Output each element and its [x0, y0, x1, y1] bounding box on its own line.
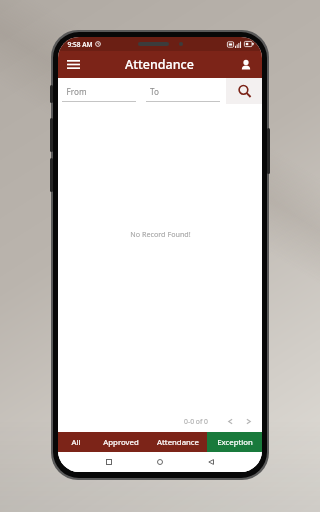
button[interactable]: Open navigation menu [62, 53, 85, 76]
button[interactable]: From [58, 78, 142, 104]
button[interactable]: Recent apps [99, 452, 119, 472]
button[interactable]: Approved [93, 432, 148, 452]
staticText: From [66, 86, 87, 97]
staticText: No Record Found! [130, 229, 191, 239]
staticText: 0-0 of 0 [184, 417, 208, 426]
staticText: Attendance [157, 437, 199, 448]
staticText: To [150, 86, 159, 97]
button[interactable]: To [142, 78, 226, 104]
staticText: Approved [103, 437, 139, 448]
button[interactable]: Attendance [148, 432, 207, 452]
staticText: Attendance [125, 56, 194, 73]
staticText: 9:58 AM [67, 40, 93, 49]
button[interactable]: Search [226, 78, 262, 104]
button[interactable]: All [58, 432, 93, 452]
button[interactable]: Back [201, 452, 221, 472]
button[interactable]: Profile [234, 53, 257, 76]
staticText: Exception [217, 437, 253, 448]
button[interactable]: Next page [241, 414, 256, 429]
button[interactable]: Exception [207, 432, 262, 452]
staticText: All [71, 437, 81, 448]
button[interactable]: Home [150, 452, 170, 472]
button[interactable]: Previous page [223, 414, 238, 429]
